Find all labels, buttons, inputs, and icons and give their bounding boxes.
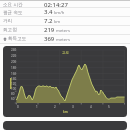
staticText: 0 bbox=[17, 105, 19, 109]
staticText: 7.2 bbox=[44, 17, 53, 25]
button[interactable]: 획득고도 bbox=[0, 35, 130, 44]
staticText: meters bbox=[56, 28, 70, 34]
staticText: 3.4 bbox=[44, 8, 53, 16]
button[interactable]: 거리 bbox=[0, 17, 130, 26]
staticText: 220 bbox=[11, 54, 17, 58]
staticText: 180 bbox=[11, 66, 17, 70]
staticText: 160 bbox=[11, 72, 17, 76]
button[interactable]: 소요 시간 bbox=[0, 0, 130, 8]
staticText: 200 bbox=[11, 60, 17, 64]
staticText: meters bbox=[56, 37, 70, 43]
staticText: 평균 속도 bbox=[3, 9, 23, 15]
staticText: 3 bbox=[72, 105, 74, 109]
staticText: 60 bbox=[11, 97, 15, 101]
staticText: 100 bbox=[11, 87, 17, 91]
staticText: 219 bbox=[44, 26, 55, 34]
staticText: km bbox=[54, 19, 61, 25]
staticText: km/h bbox=[54, 10, 65, 16]
staticText: 5 bbox=[108, 105, 110, 109]
staticText: 369 bbox=[44, 35, 55, 43]
staticText: 140 bbox=[11, 77, 17, 81]
button[interactable]: 240 bbox=[3, 46, 127, 117]
staticText: 거리 bbox=[3, 18, 13, 24]
staticText: 최고점 bbox=[3, 27, 17, 33]
button[interactable]: 평균 속도 bbox=[0, 8, 130, 17]
button[interactable]: 최고점 bbox=[0, 26, 130, 35]
staticText: 80 bbox=[11, 92, 15, 96]
staticText: 4 bbox=[90, 105, 92, 109]
staticText: 소요 시간 bbox=[3, 1, 23, 7]
staticText: 02:14:27 bbox=[44, 1, 68, 7]
button[interactable] bbox=[3, 121, 127, 130]
staticText: 2 bbox=[54, 105, 56, 109]
staticText: 고도 bbox=[62, 51, 70, 56]
staticText: 1 bbox=[36, 105, 38, 109]
staticText: 획득고도 bbox=[8, 36, 27, 42]
staticText: 240 bbox=[11, 48, 17, 52]
staticText: 120 bbox=[11, 82, 17, 86]
staticText: km bbox=[63, 110, 68, 114]
